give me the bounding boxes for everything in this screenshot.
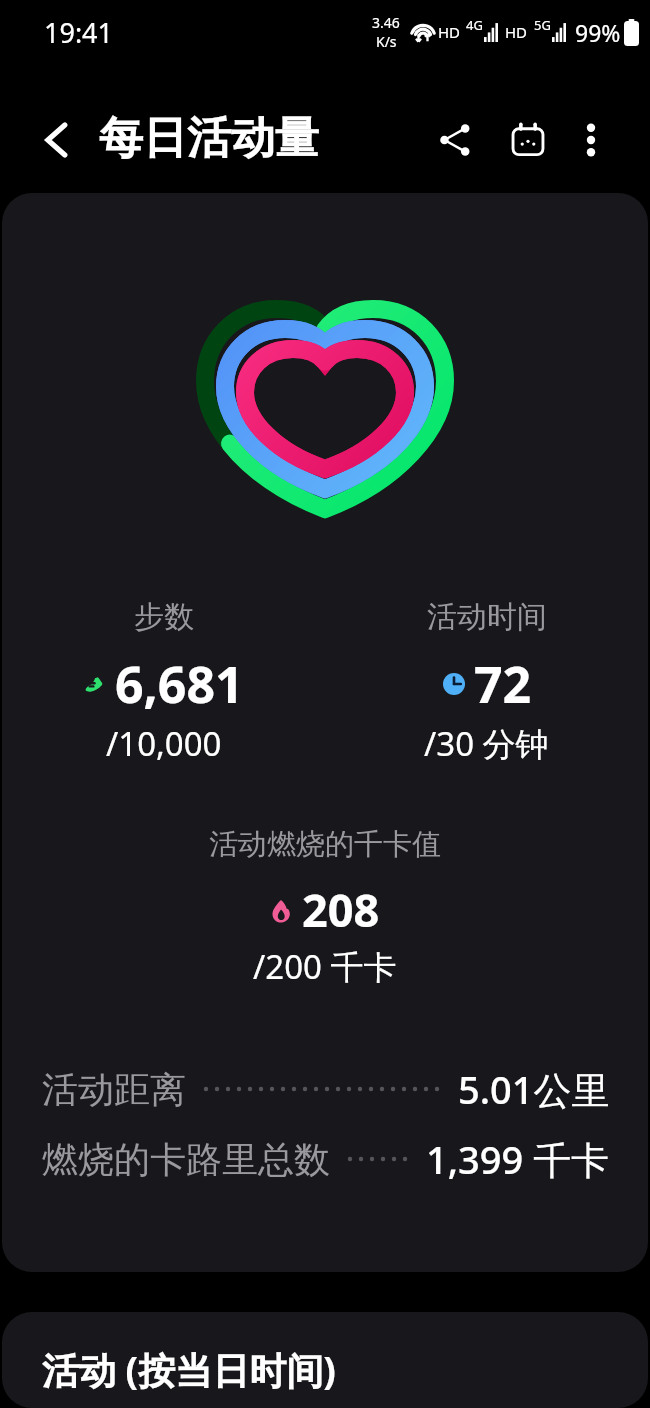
button[interactable]: 燃烧的卡路里总数 <box>42 1124 610 1194</box>
staticText: 72 <box>474 650 532 718</box>
staticText: 活动时间 <box>427 598 547 636</box>
staticText: /10,000 <box>106 721 222 766</box>
staticText: 3.46 <box>372 13 400 32</box>
staticText: /200 千卡 <box>253 944 397 989</box>
staticText: 99% <box>575 17 621 48</box>
staticText: /30 分钟 <box>424 721 549 766</box>
staticText: 6,681 <box>115 650 244 718</box>
button[interactable]: 活动距离 <box>42 1054 610 1124</box>
staticText: 每日活动量 <box>99 111 319 166</box>
staticText: 活动距离 <box>42 1067 186 1112</box>
staticText: 活动 (按当日时间) <box>42 1344 336 1395</box>
button[interactable]: More options <box>566 115 616 165</box>
staticText: HD <box>438 22 461 42</box>
staticText: K/s <box>376 32 397 51</box>
button[interactable]: Back <box>24 108 88 172</box>
button[interactable]: 活动 (按当日时间) <box>2 1312 648 1408</box>
staticText: 燃烧的卡路里总数 <box>42 1137 330 1182</box>
button[interactable]: Calendar <box>500 112 556 168</box>
staticText: 208 <box>302 879 380 940</box>
button[interactable]: 步数 <box>2 193 648 1272</box>
staticText: 步数 <box>134 598 194 636</box>
staticText: 19:41 <box>44 14 114 51</box>
staticText: 5.01公里 <box>458 1063 610 1115</box>
staticText: 1,399 千卡 <box>426 1133 610 1185</box>
staticText: 4G <box>466 16 483 34</box>
staticText: 5G <box>534 16 551 34</box>
staticText: HD <box>505 22 528 42</box>
button[interactable]: Share <box>427 112 483 168</box>
staticText: 活动燃烧的千卡值 <box>209 826 441 863</box>
